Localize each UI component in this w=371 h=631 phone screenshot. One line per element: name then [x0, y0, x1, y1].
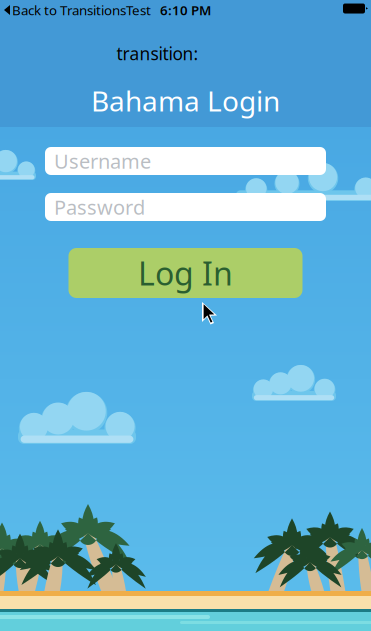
staticText: Log In: [138, 252, 233, 294]
staticText: Bahama Login: [91, 82, 280, 119]
staticText: 6:10 PM: [160, 1, 211, 19]
button[interactable]: Back to TransitionsTest: [0, 0, 151, 20]
staticText: transition:: [116, 42, 198, 65]
staticText: Username: [54, 148, 151, 174]
staticText: Back to TransitionsTest: [12, 1, 151, 19]
staticText: Password: [54, 194, 145, 220]
button[interactable]: Username: [45, 147, 326, 175]
button[interactable]: Log In: [68, 248, 302, 298]
button[interactable]: Password: [45, 193, 326, 221]
